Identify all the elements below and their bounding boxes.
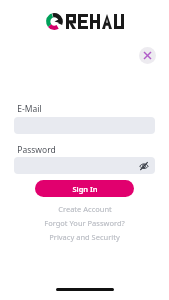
button[interactable]: Sign In (35, 180, 134, 197)
button[interactable]: Privacy and Security (0, 230, 169, 244)
staticText: Create Account (58, 204, 112, 214)
button[interactable]: Close (139, 47, 156, 64)
staticText: Password (17, 144, 56, 156)
button[interactable]: Show password (138, 160, 150, 172)
button[interactable]: Create Account (0, 202, 169, 216)
button[interactable]: Password input (14, 157, 155, 174)
button[interactable]: Forgot Your Password? (0, 216, 169, 230)
staticText: Forgot Your Password? (44, 218, 125, 228)
staticText: E-Mail (17, 103, 42, 115)
staticText: Privacy and Security (49, 232, 120, 242)
staticText: Sign In (72, 184, 98, 194)
